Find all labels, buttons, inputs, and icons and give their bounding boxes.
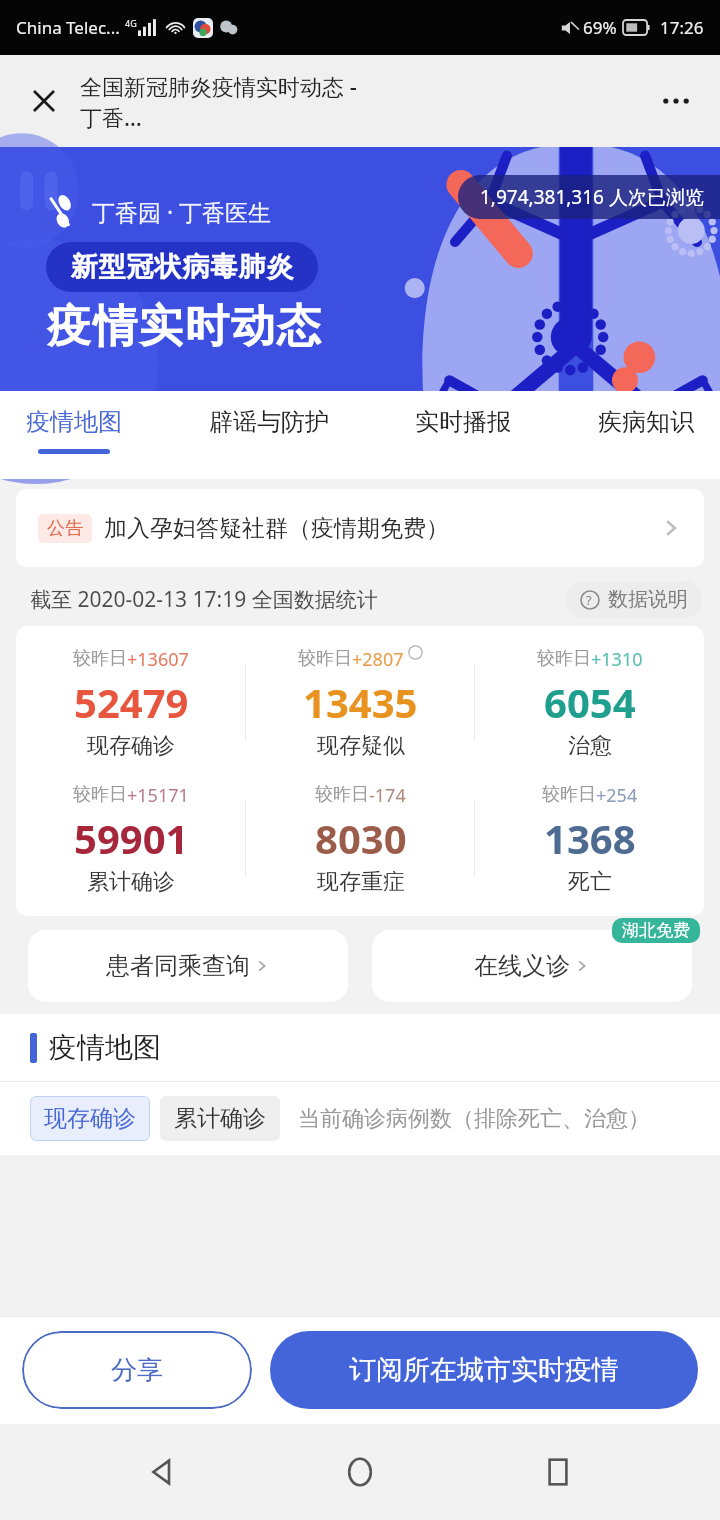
staticText: 丁香园 · 丁香医生	[92, 196, 272, 227]
staticText: 加入孕妇答疑社群（疫情期免费）	[104, 514, 449, 543]
staticText: +2807	[352, 647, 404, 672]
button[interactable]: 患者同乘查询	[28, 930, 348, 1002]
button[interactable]: 疫情地图	[22, 391, 126, 454]
button[interactable]: 较昨日	[16, 644, 246, 762]
button[interactable]: 较昨日	[475, 644, 704, 762]
staticText: 1,974,381,316 人次已浏览	[480, 184, 704, 210]
staticText: 较昨日	[73, 647, 127, 670]
staticText: 实时播报	[415, 407, 511, 437]
button[interactable]: Close	[22, 79, 66, 123]
staticText: 公告	[47, 517, 83, 540]
staticText: 8030	[315, 811, 407, 865]
staticText: 4G	[125, 17, 137, 29]
staticText: 数据说明	[608, 587, 688, 612]
staticText: 湖北免费	[622, 920, 690, 941]
button[interactable]: 较昨日	[475, 780, 704, 898]
button[interactable]: Home	[325, 1437, 395, 1507]
staticText: 治愈	[568, 732, 612, 760]
staticText: 现存疑似	[317, 732, 405, 760]
staticText: 较昨日	[315, 783, 369, 806]
staticText: 全国新冠肺炎疫情实时动态 - 丁香…	[80, 71, 367, 132]
staticText: 较昨日	[298, 647, 352, 670]
button[interactable]: More options	[654, 79, 698, 123]
staticText: 17:26	[660, 16, 704, 39]
staticText: 1368	[544, 811, 636, 865]
staticText: +13607	[127, 647, 189, 672]
button[interactable]: 现存确诊	[30, 1096, 150, 1141]
button[interactable]: 订阅所在城市实时疫情	[270, 1331, 698, 1409]
button[interactable]: 公告	[16, 489, 704, 567]
staticText: -174	[369, 783, 406, 808]
staticText: 疫情地图	[49, 1030, 161, 1065]
button[interactable]: ?	[566, 581, 702, 618]
staticText: 较昨日	[542, 783, 596, 806]
staticText: ?	[586, 591, 592, 609]
staticText: 当前确诊病例数（排除死亡、治愈）	[298, 1105, 650, 1133]
staticText: 疫情地图	[26, 407, 122, 437]
button[interactable]: 实时播报	[411, 391, 515, 449]
button[interactable]: 较昨日	[16, 780, 246, 898]
staticText: 订阅所在城市实时疫情	[349, 1353, 619, 1387]
staticText: 新型冠状病毒肺炎	[70, 250, 294, 284]
staticText: 较昨日	[73, 783, 127, 806]
button[interactable]: 在线义诊	[372, 930, 692, 1002]
staticText: 患者同乘查询	[106, 951, 250, 981]
button[interactable]: 较昨日	[246, 644, 475, 762]
staticText: 分享	[111, 1354, 163, 1387]
staticText: 辟谣与防护	[209, 407, 329, 437]
button[interactable]: Back	[128, 1437, 198, 1507]
staticText: 较昨日	[537, 647, 591, 670]
staticText: 52479	[74, 675, 189, 729]
staticText: 59901	[74, 811, 189, 865]
staticText: 疾病知识	[598, 407, 694, 437]
staticText: +1310	[591, 647, 643, 672]
staticText: 疫情实时动态	[46, 299, 322, 354]
staticText: +15171	[127, 783, 189, 808]
button[interactable]: 累计确诊	[160, 1096, 280, 1141]
staticText: 累计确诊	[174, 1104, 266, 1133]
button[interactable]: 较昨日	[246, 780, 475, 898]
staticText: 截至 2020-02-13 17:19 全国数据统计	[30, 585, 378, 614]
staticText: 在线义诊	[474, 951, 570, 981]
staticText: 累计确诊	[87, 868, 175, 896]
staticText: 13435	[303, 675, 418, 729]
button[interactable]: 辟谣与防护	[205, 391, 333, 449]
staticText: 现存重症	[317, 868, 405, 896]
staticText: 69%	[583, 16, 617, 39]
staticText: 现存确诊	[87, 732, 175, 760]
staticText: 现存确诊	[44, 1104, 136, 1133]
button[interactable]: Recent apps	[523, 1437, 593, 1507]
button[interactable]: 分享	[22, 1331, 252, 1409]
staticText: China Telec...	[16, 16, 120, 39]
staticText: 6054	[544, 675, 636, 729]
staticText: +254	[596, 783, 638, 808]
staticText: 死亡	[568, 868, 612, 896]
button[interactable]: 疾病知识	[594, 391, 698, 449]
